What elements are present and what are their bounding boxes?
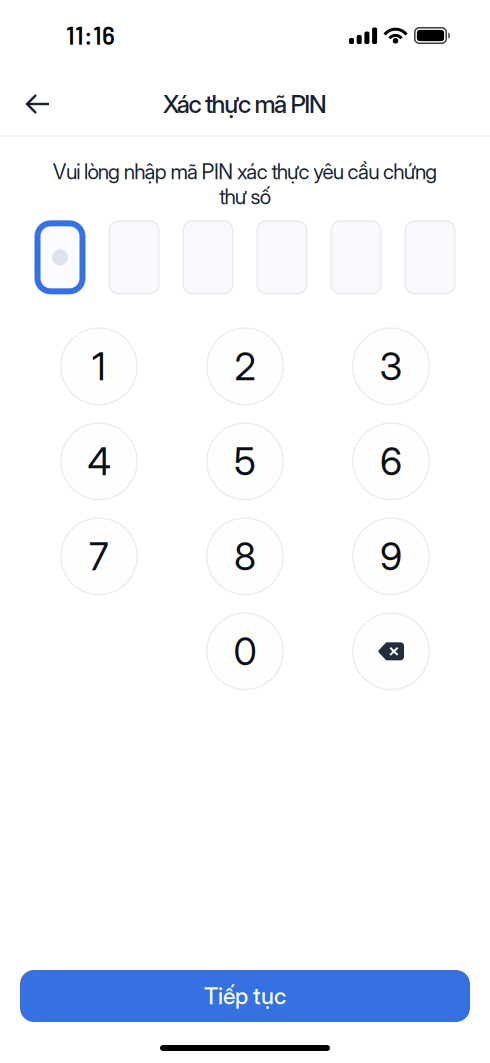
staticText: 4 (87, 438, 110, 484)
staticText: 1 (92, 343, 106, 389)
button[interactable]: 6 (352, 422, 430, 500)
staticText: 6 (380, 438, 402, 484)
staticText: 2 (234, 343, 255, 389)
button[interactable]: 8 (206, 517, 284, 595)
button[interactable]: 1 (60, 327, 138, 405)
button[interactable]: Back (0, 86, 51, 115)
button[interactable]: 3 (352, 327, 430, 405)
button[interactable]: 4 (60, 422, 138, 500)
button[interactable]: 9 (352, 517, 430, 595)
button[interactable]: Tiếp tục (20, 970, 470, 1022)
button[interactable]: 7 (60, 517, 138, 595)
staticText: Xác thực mã PIN (163, 89, 327, 119)
staticText: 8 (234, 533, 256, 579)
staticText: 9 (380, 533, 402, 579)
staticText: 5 (234, 438, 256, 484)
button[interactable]: Delete (352, 612, 430, 690)
staticText: thư số (219, 184, 271, 209)
staticText: 7 (89, 533, 109, 579)
staticText: 0 (233, 628, 256, 674)
staticText: 3 (379, 343, 402, 389)
button[interactable]: 5 (206, 422, 284, 500)
button[interactable]: 0 (206, 612, 284, 690)
staticText: Tiếp tục (204, 982, 286, 1010)
button[interactable]: 2 (206, 327, 284, 405)
staticText: Vui lòng nhập mã PIN xác thực yêu cầu ch… (53, 159, 437, 184)
staticText: 11:16 (66, 20, 115, 50)
